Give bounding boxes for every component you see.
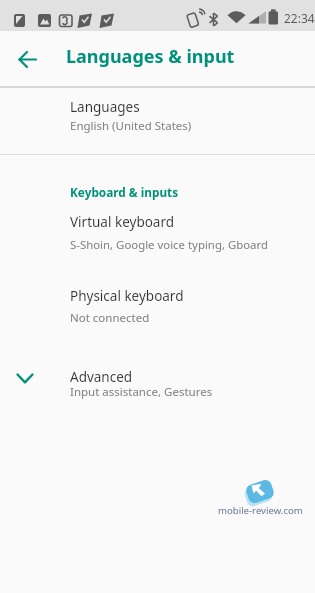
staticText: Virtual keyboard	[70, 213, 175, 231]
staticText: Keyboard & inputs	[70, 184, 179, 200]
button[interactable]: Advanced	[0, 358, 315, 420]
button[interactable]	[0, 31, 56, 86]
button[interactable]: Virtual keyboard	[0, 204, 315, 268]
staticText: Input assistance, Gestures	[70, 384, 213, 400]
staticText: Advanced	[70, 368, 133, 386]
staticText: Not connected	[70, 310, 150, 326]
staticText: mobile-review.com	[218, 504, 303, 517]
staticText: English (United States)	[70, 118, 192, 134]
staticText: Physical keyboard	[70, 287, 184, 305]
button[interactable]: Languages	[0, 88, 315, 154]
button[interactable]: Physical keyboard	[0, 278, 315, 342]
staticText: Languages & input	[66, 44, 235, 69]
staticText: 22:34	[284, 10, 315, 26]
staticText: Languages	[70, 98, 140, 116]
staticText: S-Shoin, Google voice typing, Gboard	[70, 237, 268, 253]
